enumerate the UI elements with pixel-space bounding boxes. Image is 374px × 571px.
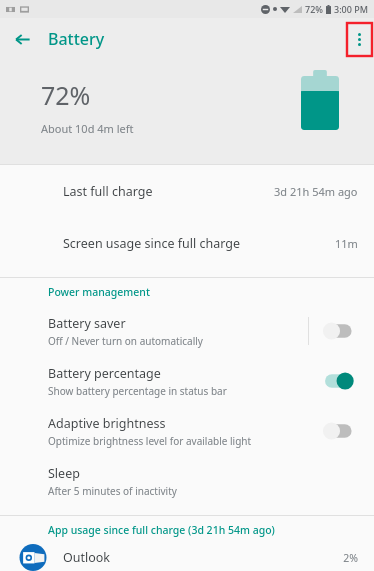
- staticText: 72%: [305, 3, 323, 15]
- button[interactable]: Outlook: [0, 544, 374, 571]
- button[interactable]: Battery percentage: [323, 368, 357, 394]
- button[interactable]: Battery percentage: [0, 356, 374, 406]
- button[interactable]: Back: [4, 21, 40, 57]
- button[interactable]: Last full charge: [0, 165, 374, 217]
- staticText: 72%: [41, 78, 91, 112]
- button[interactable]: Sleep: [0, 456, 374, 506]
- staticText: Off / Never turn on automatically: [48, 334, 203, 348]
- staticText: 11m: [335, 236, 358, 251]
- staticText: Battery saver: [48, 315, 126, 332]
- staticText: Screen usage since full charge: [63, 235, 241, 252]
- staticText: App usage since full charge (3d 21h 54m …: [48, 523, 275, 537]
- staticText: Adaptive brightness: [48, 415, 166, 432]
- staticText: About 10d 4m left: [41, 121, 134, 136]
- button[interactable]: More options: [347, 23, 372, 56]
- staticText: Power management: [48, 285, 150, 299]
- button[interactable]: Screen usage since full charge: [0, 217, 374, 269]
- button[interactable]: Battery saver: [323, 318, 357, 344]
- staticText: Battery: [48, 28, 105, 50]
- staticText: 3:00 PM: [334, 3, 368, 15]
- button[interactable]: Battery saver: [0, 306, 374, 356]
- button[interactable]: Adaptive brightness: [0, 406, 374, 456]
- staticText: Last full charge: [63, 183, 153, 200]
- staticText: 3d 21h 54m ago: [274, 184, 358, 199]
- staticText: Battery percentage: [48, 365, 161, 382]
- button[interactable]: Adaptive brightness: [323, 418, 357, 444]
- staticText: After 5 minutes of inactivity: [48, 484, 177, 498]
- staticText: Outlook: [63, 549, 343, 566]
- staticText: Optimize brightness level for available …: [48, 434, 252, 448]
- staticText: Sleep: [48, 465, 80, 482]
- staticText: 2%: [343, 551, 358, 565]
- staticText: Show battery percentage in status bar: [48, 384, 227, 398]
